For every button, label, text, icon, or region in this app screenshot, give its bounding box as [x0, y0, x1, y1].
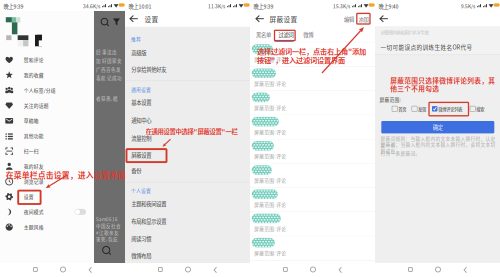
- staticText: 晚上10:01: [128, 2, 151, 10]
- staticText: 基本设置: [131, 98, 151, 106]
- button[interactable]: 屏蔽范围: 评论: [250, 0, 375, 24]
- staticText: 34.6K/s: [83, 3, 100, 10]
- button[interactable]: 我的好友: [0, 0, 93, 15]
- button[interactable]: 确定: [375, 0, 488, 12]
- staticText: 毒航 记成功: [96, 75, 122, 81]
- staticText: Sam0616: [96, 216, 118, 223]
- staticText: 在通用设置中选择"屏蔽设置"一栏: [146, 127, 238, 136]
- staticText: 赞和评论: [24, 56, 44, 63]
- staticText: 阅读习惯: [131, 235, 151, 242]
- button[interactable]: 阅读习惯: [125, 0, 250, 17]
- button[interactable]: 其他功能: [0, 0, 93, 15]
- button[interactable]: 屏蔽范围: 评论: [250, 0, 375, 24]
- staticText: 屏蔽范围: 评论: [254, 225, 286, 232]
- staticText: 关注的话题: [24, 102, 49, 109]
- staticText: 屏蔽设置: [131, 151, 151, 159]
- staticText: 晚上9:40: [378, 2, 398, 10]
- button[interactable]: 备份: [125, 0, 250, 17]
- staticText: 草稿箱: [24, 117, 39, 124]
- button[interactable]: 屏蔽范围: 评论: [250, 0, 375, 24]
- staticText: 其他功能: [24, 132, 44, 139]
- staticText: 屏蔽范围只选择微博评论列表，其: [390, 75, 495, 85]
- button[interactable]: 屏蔽范围: 评论: [250, 0, 375, 24]
- button[interactable]: 设置: [0, 0, 93, 15]
- button[interactable]: 屏蔽范围: 评论: [250, 0, 375, 24]
- button[interactable]: 分享给其他好友: [125, 0, 250, 17]
- staticText: 加 好国家安: [96, 57, 122, 64]
- staticText: 推荐: [131, 35, 141, 42]
- staticText: 浏览记录: [24, 178, 44, 185]
- staticText: 屏蔽范围: 评论: [254, 201, 286, 208]
- button[interactable]: 过滤词: [250, 0, 375, 16]
- staticText: 微博: [303, 31, 313, 38]
- button[interactable]: 屏蔽范围: 评论: [250, 0, 375, 24]
- staticText: 屏蔽范围: 评论: [254, 153, 286, 159]
- button[interactable]: 布局和显示设置: [125, 0, 250, 17]
- button[interactable]: 微博: [250, 0, 266, 7]
- staticText: 高级版: [131, 49, 146, 56]
- staticText: 微博评论列表: [438, 106, 462, 112]
- button[interactable]: 赞和评论: [0, 0, 93, 15]
- staticText: 主题风格: [24, 223, 44, 230]
- button[interactable]: 返回: [125, 0, 136, 10]
- button[interactable]: 主题和夜间设置: [125, 0, 250, 17]
- staticText: 设置: [144, 14, 158, 24]
- button[interactable]: 屏蔽范围: 评论: [250, 0, 375, 24]
- staticText: 屏蔽范围: 评论: [254, 249, 286, 256]
- staticText: 害死. 包庇: [96, 236, 118, 242]
- staticText: 备份: [131, 167, 141, 174]
- staticText: 对微博内容和用户名字生效: [380, 29, 428, 36]
- staticText: 按钮"，进入过滤词设置界面: [257, 55, 345, 65]
- button[interactable]: 扫一扫: [0, 0, 93, 15]
- button[interactable]: 浏览记录: [0, 0, 93, 15]
- staticText: 旧 事法出: [96, 48, 117, 55]
- staticText: 夜间模式: [24, 208, 44, 215]
- button[interactable]: 高级版: [125, 0, 250, 17]
- button[interactable]: 我的收藏: [0, 0, 93, 15]
- staticText: 一切可能误点的训练生姓名OR代号: [380, 43, 472, 51]
- staticText: 主题和夜间设置: [131, 200, 166, 207]
- staticText: 晚上9:39: [3, 2, 23, 10]
- button[interactable]: 关注的话题: [0, 0, 93, 15]
- button[interactable]: 添加: [250, 0, 264, 8]
- staticText: 流量控制: [131, 134, 151, 142]
- button[interactable]: 夜间模式: [0, 0, 93, 15]
- button[interactable]: 基本设置: [125, 0, 250, 17]
- staticText: 行为一条屏蔽词。: [380, 150, 420, 157]
- staticText: 首页: [398, 106, 406, 112]
- staticText: 微博布局: [131, 252, 151, 259]
- button[interactable]: 返回: [250, 0, 261, 10]
- staticText: 屏蔽词；当输入框内的文本输入换行时，会将文本切割成每: [380, 141, 495, 154]
- staticText: 编辑: [344, 15, 354, 23]
- button[interactable]: 通知中心: [125, 0, 250, 17]
- button[interactable]: 草稿箱: [0, 0, 93, 15]
- staticText: 个人标签/分组: [24, 87, 56, 94]
- staticText: 屏蔽范围: 评论: [254, 56, 286, 63]
- staticText: 添加: [358, 15, 368, 23]
- button[interactable]: 流量控制: [125, 0, 250, 17]
- staticText: 个人设置: [131, 187, 151, 194]
- button[interactable]: 屏蔽范围: 评论: [250, 0, 375, 24]
- button[interactable]: 主题风格: [0, 0, 93, 15]
- staticText: 分享给其他好友: [131, 65, 166, 73]
- staticText: 在菜单栏点击设置，进入设置界面: [6, 169, 126, 181]
- button[interactable]: 屏蔽设置: [125, 0, 250, 17]
- button[interactable]: 黑名单: [250, 0, 268, 7]
- button[interactable]: 微博评论列表: [375, 106, 406, 113]
- staticText: 屏蔽范围:: [379, 96, 400, 103]
- staticText: 9.5K/s: [461, 3, 475, 10]
- button[interactable]: 返回: [375, 0, 386, 10]
- button[interactable]: 微博布局: [125, 0, 250, 17]
- staticText: 屏蔽范围: 评论: [254, 80, 286, 87]
- staticText: 过滤词: [278, 31, 293, 38]
- staticText: 发现: [418, 106, 426, 112]
- button[interactable]: 编辑: [250, 0, 264, 8]
- staticText: 我的好友: [24, 163, 44, 170]
- button[interactable]: 屏蔽范围: 评论: [250, 0, 375, 24]
- button[interactable]: 个人标签/分组: [0, 0, 93, 15]
- staticText: 广西百色发: [96, 66, 121, 72]
- staticText: 黑名单: [256, 31, 271, 38]
